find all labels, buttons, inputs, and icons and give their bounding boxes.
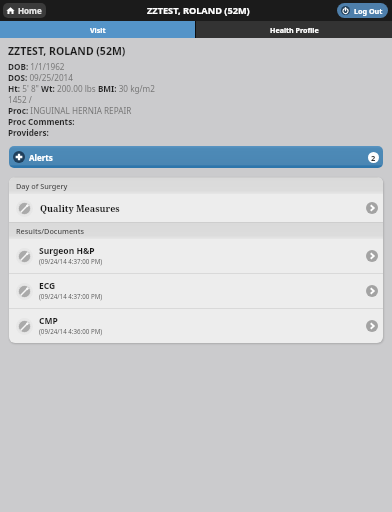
staticText: Home	[18, 5, 42, 16]
staticText: (09/24/14 4:36:00 PM)	[39, 327, 103, 335]
staticText: ZZTEST, ROLAND (52M)	[147, 4, 250, 17]
staticText: Surgeon H&P	[39, 245, 95, 257]
staticText: Day of Surgery	[16, 181, 68, 191]
button[interactable]: Alerts	[9, 146, 383, 168]
staticText: (09/24/14 4:37:00 PM)	[39, 257, 103, 265]
staticText: ZZTEST, ROLAND (52M)	[8, 44, 126, 58]
staticText: Ht: 5' 8" Wt: 200.00 lbs BMI: 30 kg/m2	[8, 83, 155, 94]
staticText: (09/24/14 4:37:00 PM)	[39, 292, 103, 300]
staticText: Quality Measures	[40, 202, 120, 214]
button[interactable]: CMP	[9, 309, 383, 343]
button[interactable]: ECG	[9, 274, 383, 308]
staticText: Proc: INGUINAL HERNIA REPAIR	[8, 105, 132, 116]
staticText: Alerts	[29, 152, 53, 163]
other: Open Surgeon H&P	[366, 250, 378, 262]
button[interactable]: Quality Measures	[9, 194, 383, 222]
button[interactable]: Visit	[0, 21, 195, 38]
staticText: ECG	[39, 280, 56, 292]
staticText: Visit	[90, 25, 106, 35]
staticText: Health Profile	[270, 25, 319, 35]
other: Open ECG	[366, 285, 378, 297]
staticText: Log Out	[354, 6, 383, 16]
staticText: DOB: 1/1/1962	[8, 61, 65, 72]
other: Open CMP	[366, 320, 378, 332]
staticText: CMP	[39, 315, 58, 327]
staticText: Providers:	[8, 127, 49, 138]
staticText: 2	[371, 153, 376, 163]
staticText: 1452 /	[8, 94, 32, 105]
button[interactable]: Log Out	[337, 3, 388, 18]
other: Open Quality Measures	[366, 202, 378, 214]
button[interactable]: Health Profile	[196, 21, 392, 38]
staticText: DOS: 09/25/2014	[8, 72, 73, 83]
button[interactable]: Home	[3, 3, 46, 18]
staticText: Results/Documents	[16, 226, 85, 236]
staticText: Proc Comments:	[8, 116, 75, 127]
button[interactable]: Surgeon H&P	[9, 239, 383, 273]
